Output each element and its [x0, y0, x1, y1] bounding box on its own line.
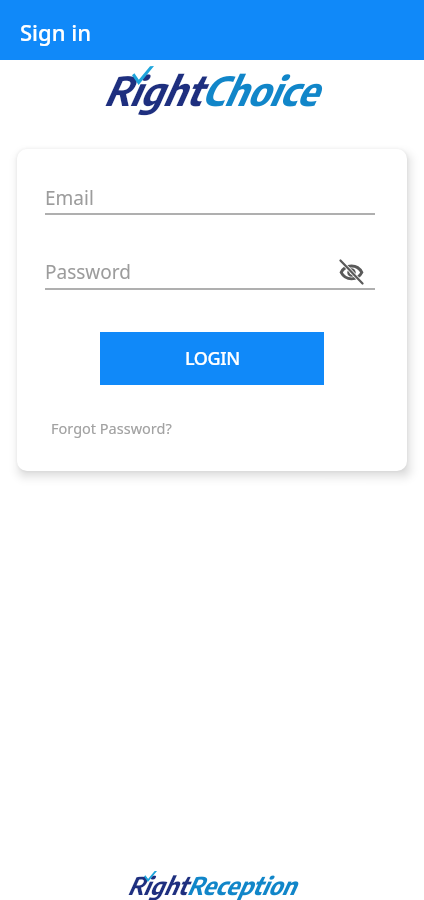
staticText: RightChoice — [103, 65, 317, 115]
staticText: Email — [45, 185, 94, 211]
button[interactable]: Forgot Password? — [45, 412, 178, 444]
button[interactable]: Email — [45, 179, 375, 215]
button[interactable]: LOGIN — [100, 332, 324, 385]
staticText: Password — [45, 259, 131, 285]
staticText: Sign in — [20, 17, 91, 47]
staticText: RightReception — [127, 870, 295, 900]
button[interactable]: Password — [45, 253, 375, 289]
button[interactable]: Show password — [334, 255, 368, 289]
staticText: Forgot Password? — [51, 418, 172, 438]
button[interactable]: Sign in — [0, 0, 424, 60]
staticText: LOGIN — [185, 346, 240, 371]
